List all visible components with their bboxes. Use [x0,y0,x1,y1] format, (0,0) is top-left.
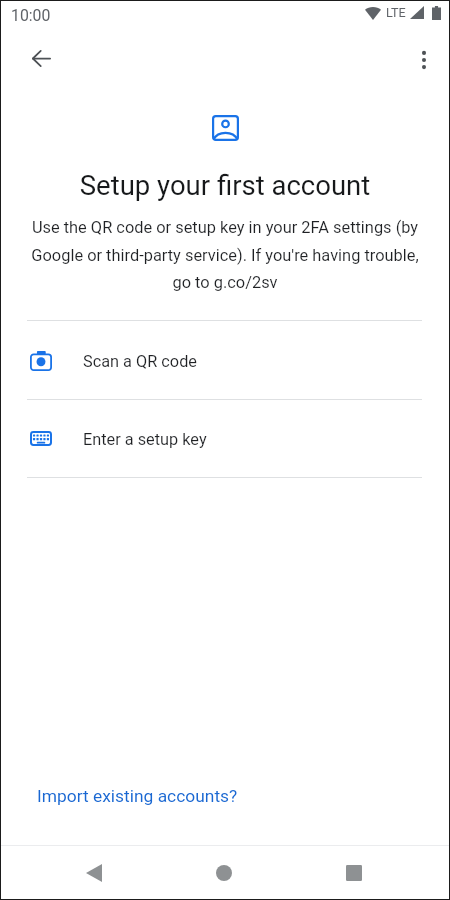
button[interactable]: Enter a setup key [1,400,449,477]
staticText: Scan a QR code [83,352,197,371]
staticText: Enter a setup key [83,430,207,449]
button[interactable]: Back [70,849,118,897]
staticText: 10:00 [11,6,51,25]
button[interactable]: Recent apps [330,849,378,897]
button[interactable]: Scan a QR code [1,321,449,399]
staticText: Setup your first account [1,169,449,201]
button[interactable]: Navigate up [23,40,60,77]
button[interactable]: Home [200,849,248,897]
staticText: LTE [386,5,406,20]
button[interactable]: Import existing accounts? [1,778,449,814]
button[interactable]: More options [405,41,442,78]
staticText: Use the QR code or setup key in your 2FA… [23,218,427,292]
staticText: Import existing accounts? [37,786,238,806]
